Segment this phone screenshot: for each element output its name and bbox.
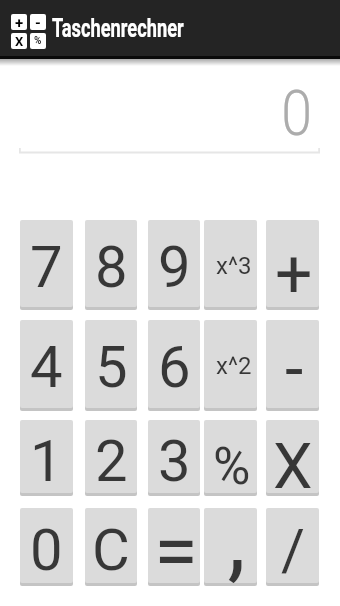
staticText: 8 bbox=[95, 233, 128, 301]
staticText: 0 bbox=[30, 516, 63, 583]
staticText: 2 bbox=[95, 427, 128, 493]
staticText: / bbox=[281, 516, 305, 583]
button[interactable]: 1 bbox=[20, 420, 73, 496]
button[interactable]: + bbox=[266, 220, 319, 310]
button[interactable]: 9 bbox=[148, 220, 200, 310]
button[interactable]: 6 bbox=[148, 320, 200, 411]
staticText: 5 bbox=[95, 333, 128, 401]
staticText: Taschenrechner bbox=[52, 14, 184, 43]
button[interactable]: 3 bbox=[148, 420, 200, 496]
button[interactable]: x^3 bbox=[204, 220, 257, 310]
staticText: = bbox=[154, 508, 198, 580]
staticText: % bbox=[213, 437, 251, 493]
staticText: % bbox=[34, 35, 42, 47]
button[interactable]: 0 bbox=[20, 508, 73, 586]
button[interactable]: = bbox=[148, 508, 200, 586]
staticText: x^3 bbox=[216, 252, 252, 280]
button[interactable]: 4 bbox=[20, 320, 73, 411]
staticText: , bbox=[227, 508, 247, 583]
staticText: 1 bbox=[30, 427, 63, 493]
staticText: 3 bbox=[158, 427, 191, 493]
button[interactable]: - bbox=[266, 320, 319, 411]
staticText: + bbox=[15, 14, 24, 30]
staticText: X bbox=[15, 34, 24, 49]
button[interactable]: 7 bbox=[20, 220, 73, 310]
staticText: - bbox=[285, 331, 304, 408]
button[interactable]: C bbox=[85, 508, 137, 586]
button[interactable]: X bbox=[266, 420, 319, 496]
button[interactable]: 2 bbox=[85, 420, 137, 496]
staticText: - bbox=[35, 14, 41, 30]
button[interactable]: % bbox=[204, 420, 257, 496]
staticText: x^2 bbox=[216, 352, 252, 380]
staticText: 6 bbox=[158, 333, 191, 401]
staticText: 4 bbox=[30, 333, 63, 401]
button[interactable]: / bbox=[266, 508, 319, 586]
staticText: 7 bbox=[30, 233, 63, 301]
staticText: + bbox=[275, 236, 313, 307]
button[interactable]: x^2 bbox=[204, 320, 257, 411]
button[interactable]: , bbox=[204, 508, 257, 586]
staticText: 0 bbox=[281, 77, 312, 151]
button[interactable]: 0 bbox=[0, 77, 312, 151]
button[interactable]: 8 bbox=[85, 220, 137, 310]
button[interactable]: 5 bbox=[85, 320, 137, 411]
staticText: 9 bbox=[158, 233, 191, 301]
staticText: X bbox=[273, 430, 313, 493]
staticText: C bbox=[92, 516, 130, 583]
